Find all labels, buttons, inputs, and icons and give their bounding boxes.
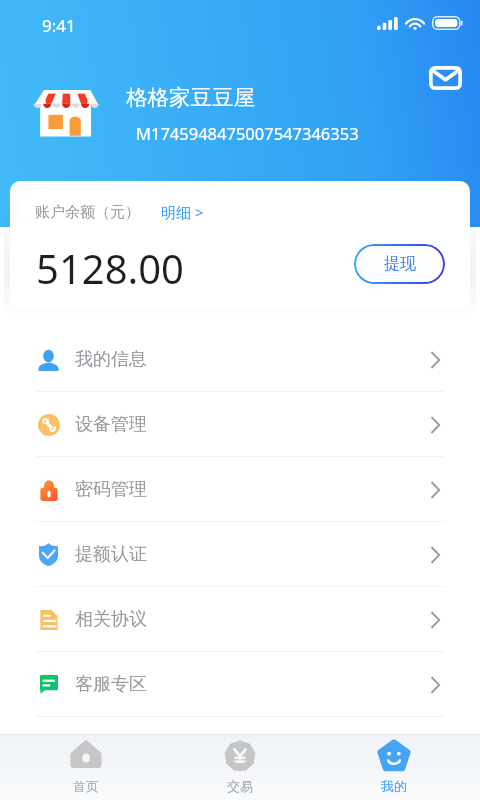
button[interactable]: Messages: [423, 56, 467, 100]
staticText: 账户余额（元）: [35, 203, 140, 222]
button[interactable]: 首页: [9, 735, 163, 800]
staticText: 我的信息: [75, 348, 147, 371]
staticText: 相关协议: [75, 608, 147, 631]
staticText: 5128.00: [36, 241, 184, 295]
staticText: M1745948475007547346353: [136, 122, 359, 144]
button[interactable]: 密码管理: [0, 457, 480, 522]
button[interactable]: 我的: [317, 735, 471, 800]
staticText: 提现: [384, 254, 416, 274]
button[interactable]: 相关协议: [0, 587, 480, 652]
staticText: 我的: [381, 778, 407, 794]
staticText: 格格家豆豆屋: [126, 84, 255, 111]
staticText: 设备管理: [75, 413, 147, 436]
button[interactable]: 交易: [163, 735, 317, 800]
button[interactable]: 明细 >: [161, 202, 204, 222]
staticText: 明细 >: [161, 202, 204, 222]
staticText: 9:41: [42, 14, 76, 37]
button[interactable]: 提额认证: [0, 522, 480, 587]
button[interactable]: 客服专区: [0, 652, 480, 717]
button[interactable]: 设备管理: [0, 392, 480, 457]
staticText: 客服专区: [75, 673, 147, 696]
staticText: 提额认证: [75, 543, 147, 566]
staticText: 首页: [73, 778, 99, 794]
button[interactable]: 我的信息: [0, 327, 480, 392]
staticText: 交易: [227, 778, 253, 794]
button[interactable]: 提现: [354, 244, 445, 284]
staticText: 密码管理: [75, 478, 147, 501]
